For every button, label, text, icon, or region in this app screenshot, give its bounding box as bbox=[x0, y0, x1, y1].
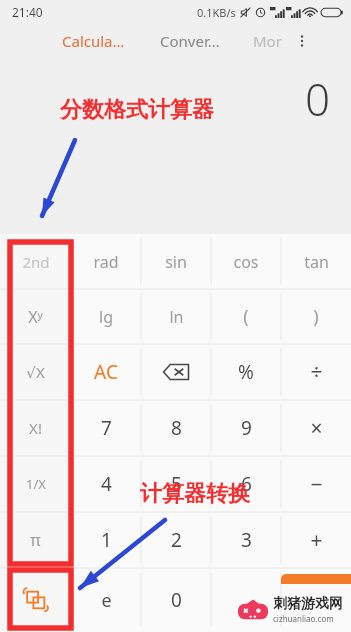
button[interactable]: 4 bbox=[71, 456, 141, 512]
button[interactable]: More options bbox=[290, 29, 314, 53]
staticText: sin bbox=[165, 251, 187, 273]
button[interactable]: tan bbox=[281, 234, 351, 289]
staticText: 8 bbox=[171, 415, 182, 441]
button[interactable]: 0 bbox=[141, 568, 211, 632]
button[interactable]: cos bbox=[211, 234, 281, 289]
staticText: 分数格式计算器 bbox=[60, 96, 214, 124]
staticText: e bbox=[101, 588, 112, 613]
staticText: Mor bbox=[253, 31, 282, 51]
button[interactable]: . bbox=[211, 568, 281, 632]
button[interactable]: Unit converter bbox=[0, 568, 71, 632]
button[interactable]: 1/X bbox=[0, 456, 71, 512]
button[interactable]: × bbox=[281, 400, 351, 456]
button[interactable]: 1 bbox=[71, 512, 141, 568]
staticText: √X bbox=[26, 362, 45, 382]
staticText: 4 bbox=[101, 471, 112, 497]
button[interactable]: 8 bbox=[141, 400, 211, 456]
button[interactable]: Mor bbox=[251, 31, 284, 51]
staticText: 3 bbox=[241, 527, 252, 553]
staticText: Calcula… bbox=[62, 31, 125, 51]
staticText: . bbox=[243, 587, 249, 613]
button[interactable]: ÷ bbox=[281, 344, 351, 400]
staticText: 7 bbox=[101, 415, 112, 441]
staticText: 5 bbox=[171, 471, 182, 497]
staticText: ( bbox=[243, 304, 249, 329]
staticText: Conver… bbox=[160, 31, 220, 51]
staticText: cizhuanliao.com bbox=[273, 613, 334, 624]
staticText: 计算器转换 bbox=[140, 480, 250, 508]
staticText: 0 bbox=[305, 69, 331, 129]
staticText: 刺猪游戏网 bbox=[273, 595, 343, 613]
button[interactable]: e bbox=[71, 568, 141, 632]
button[interactable]: 5 bbox=[141, 456, 211, 512]
button[interactable]: 7 bbox=[71, 400, 141, 456]
button[interactable]: lg bbox=[71, 289, 141, 344]
staticText: × bbox=[310, 414, 323, 443]
staticText: 2nd bbox=[22, 252, 50, 272]
staticText: tan bbox=[304, 251, 329, 273]
staticText: AC bbox=[94, 359, 118, 385]
button[interactable]: Calcula… bbox=[58, 31, 129, 51]
button[interactable]: AC bbox=[71, 344, 141, 400]
button[interactable]: % bbox=[211, 344, 281, 400]
button[interactable]: 2 bbox=[141, 512, 211, 568]
staticText: ÷ bbox=[310, 358, 323, 387]
button[interactable]: Backspace bbox=[141, 344, 211, 400]
button[interactable]: Equals bbox=[281, 568, 351, 632]
button[interactable]: X! bbox=[0, 400, 71, 456]
button[interactable]: π bbox=[0, 512, 71, 568]
staticText: 6 bbox=[241, 471, 252, 497]
button[interactable]: 2nd bbox=[0, 234, 71, 289]
staticText: 21:40 bbox=[12, 4, 43, 20]
staticText: rad bbox=[93, 251, 119, 273]
staticText: 0.1KB/s bbox=[197, 5, 236, 20]
button[interactable]: sin bbox=[141, 234, 211, 289]
staticText: Xʸ bbox=[28, 306, 43, 328]
button[interactable]: 6 bbox=[211, 456, 281, 512]
staticText: 0 bbox=[171, 587, 182, 613]
button[interactable]: ( bbox=[211, 289, 281, 344]
staticText: lg bbox=[99, 306, 113, 328]
button[interactable]: Conver… bbox=[156, 31, 224, 51]
staticText: ln bbox=[169, 306, 184, 328]
button[interactable]: ln bbox=[141, 289, 211, 344]
button[interactable]: − bbox=[281, 456, 351, 512]
staticText: + bbox=[310, 526, 323, 555]
button[interactable]: + bbox=[281, 512, 351, 568]
staticText: 9 bbox=[241, 415, 252, 441]
staticText: % bbox=[238, 359, 254, 385]
staticText: X! bbox=[29, 418, 42, 438]
staticText: 1/X bbox=[26, 475, 46, 493]
staticText: 1 bbox=[101, 527, 112, 553]
staticText: − bbox=[310, 470, 323, 499]
button[interactable]: 3 bbox=[211, 512, 281, 568]
staticText: π bbox=[30, 529, 41, 551]
staticText: ) bbox=[313, 304, 319, 329]
staticText: 2 bbox=[171, 527, 182, 553]
button[interactable]: rad bbox=[71, 234, 141, 289]
button[interactable]: ) bbox=[281, 289, 351, 344]
button[interactable]: √X bbox=[0, 344, 71, 400]
button[interactable]: Xʸ bbox=[0, 289, 71, 344]
staticText: cos bbox=[233, 251, 259, 273]
button[interactable]: 9 bbox=[211, 400, 281, 456]
